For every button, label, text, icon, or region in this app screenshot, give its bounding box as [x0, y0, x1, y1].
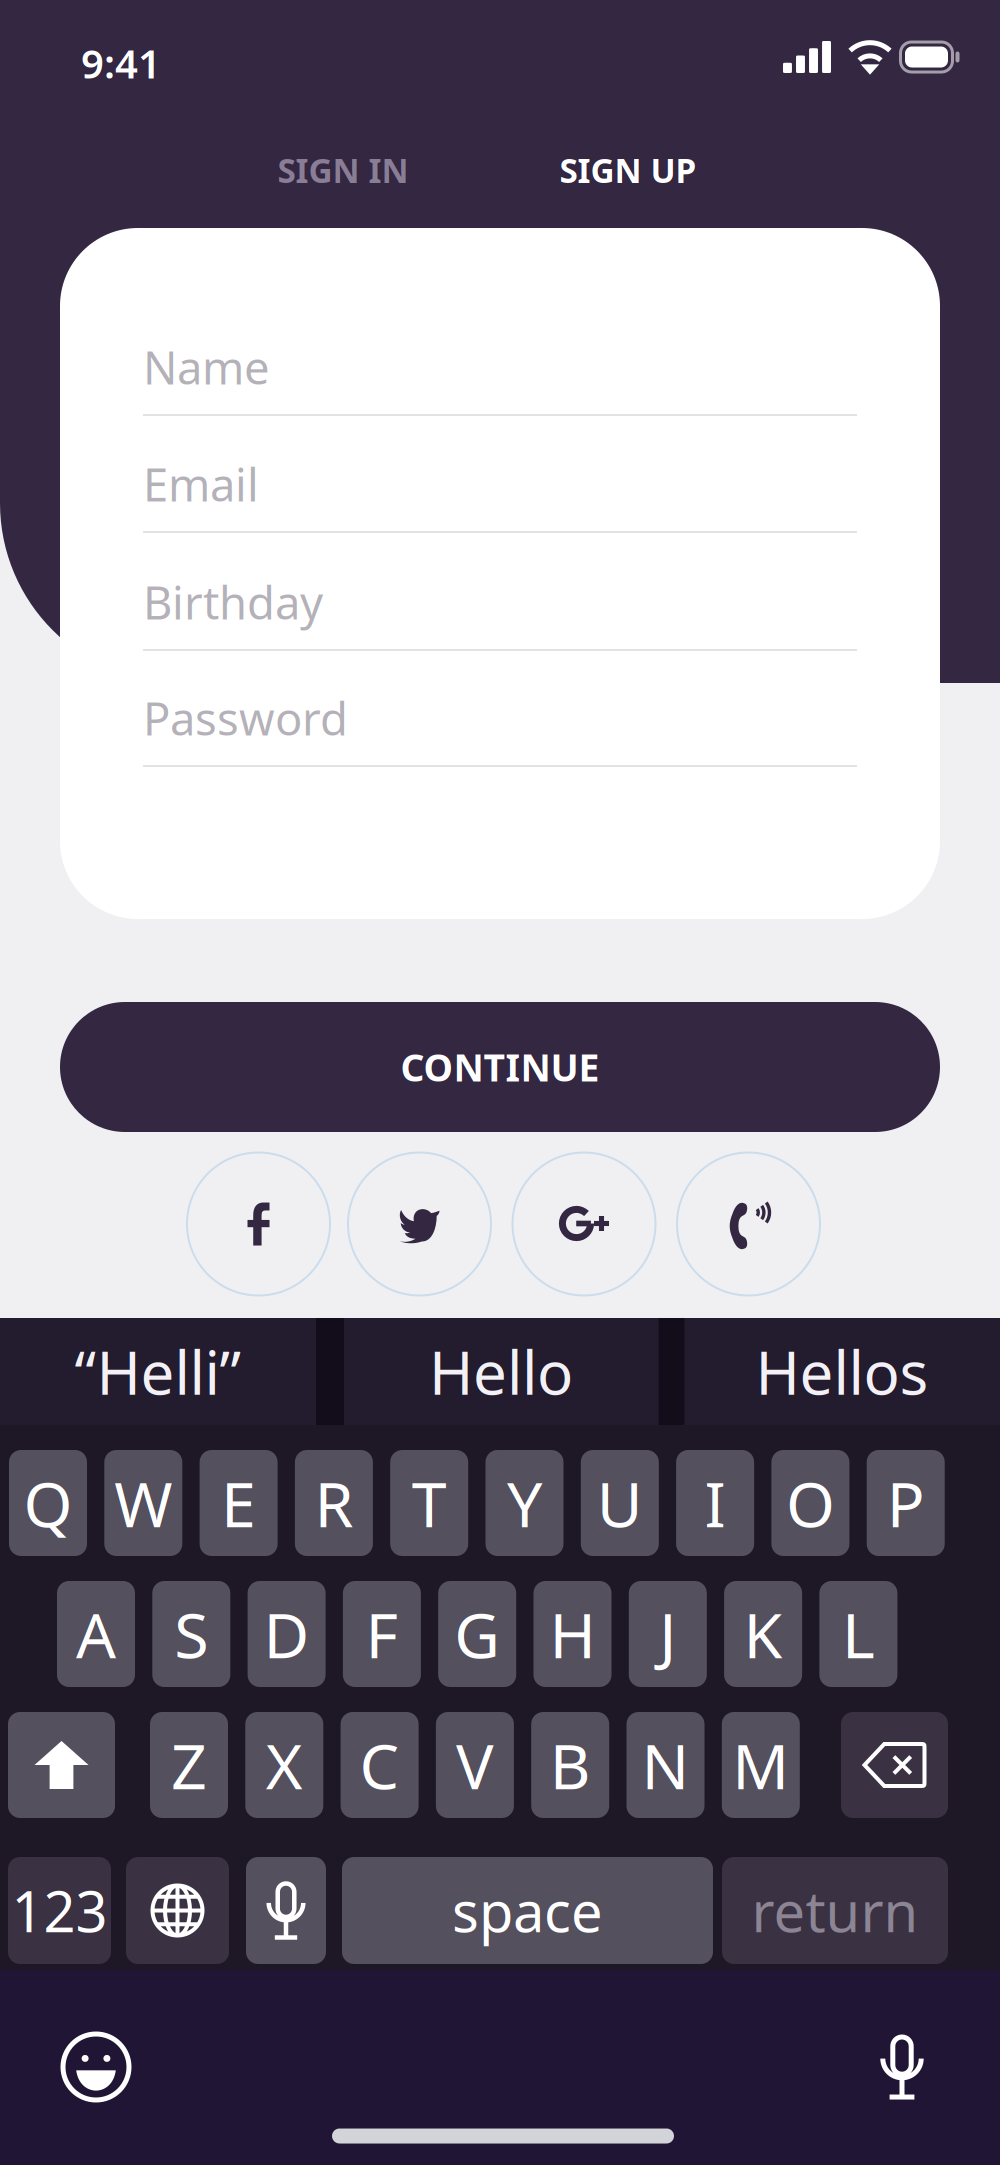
button[interactable]: Sign up with phone [676, 1151, 821, 1296]
staticText: Email [143, 454, 259, 514]
staticText: N [641, 1723, 689, 1807]
button[interactable]: Shift [8, 1712, 115, 1818]
button[interactable]: G [438, 1581, 516, 1687]
button[interactable]: Sign up with Twitter [347, 1151, 492, 1296]
staticText: V [456, 1723, 494, 1807]
staticText: C [360, 1723, 400, 1807]
staticText: Hello [429, 1332, 573, 1411]
button[interactable]: C [341, 1712, 419, 1818]
button[interactable]: SIGN UP [508, 136, 748, 204]
staticText: R [314, 1461, 353, 1545]
staticText: H [549, 1592, 595, 1676]
button[interactable]: S [152, 1581, 230, 1687]
button[interactable]: Sign up with Facebook [186, 1151, 331, 1296]
button[interactable]: L [819, 1581, 897, 1687]
staticText: 9:41 [81, 36, 161, 89]
button[interactable]: Q [9, 1450, 87, 1556]
staticText: O [786, 1461, 835, 1545]
button[interactable]: Sign up with Google [511, 1151, 656, 1296]
button[interactable]: T [390, 1450, 468, 1556]
button[interactable]: J [629, 1581, 707, 1687]
staticText: S [174, 1592, 208, 1676]
staticText: return [751, 1873, 918, 1948]
button[interactable]: Emoji [48, 2019, 144, 2115]
staticText: F [365, 1592, 398, 1676]
staticText: Q [23, 1461, 72, 1545]
button[interactable]: Y [485, 1450, 563, 1556]
button[interactable]: A [57, 1581, 135, 1687]
button[interactable]: Delete [841, 1712, 948, 1818]
button[interactable]: K [724, 1581, 802, 1687]
staticText: Birthday [143, 572, 323, 632]
staticText: CONTINUE [400, 1042, 599, 1092]
staticText: K [744, 1592, 783, 1676]
button[interactable]: Hellos [684, 1318, 1000, 1425]
button[interactable]: B [531, 1712, 609, 1818]
button[interactable]: W [104, 1450, 182, 1556]
staticText: SIGN UP [559, 148, 696, 192]
staticText: Password [143, 688, 348, 748]
button[interactable]: E [200, 1450, 278, 1556]
staticText: Y [507, 1461, 542, 1545]
staticText: U [597, 1461, 643, 1545]
staticText: Hellos [755, 1332, 928, 1411]
staticText: J [659, 1592, 676, 1676]
button[interactable]: Dictation [246, 1857, 326, 1964]
staticText: W [114, 1461, 172, 1545]
staticText: Z [171, 1723, 207, 1807]
button[interactable]: V [436, 1712, 514, 1818]
staticText: M [732, 1723, 789, 1807]
staticText: T [412, 1461, 447, 1545]
button[interactable]: 123 [8, 1857, 111, 1964]
button[interactable]: H [533, 1581, 611, 1687]
staticText: D [264, 1592, 310, 1676]
staticText: G [454, 1592, 500, 1676]
button[interactable]: Next keyboard [126, 1857, 229, 1964]
button[interactable]: P [867, 1450, 945, 1556]
button[interactable]: O [771, 1450, 849, 1556]
button[interactable]: F [343, 1581, 421, 1687]
button[interactable]: SIGN IN [223, 136, 463, 204]
button[interactable]: U [581, 1450, 659, 1556]
button[interactable]: return [722, 1857, 948, 1964]
staticText: SIGN IN [277, 148, 408, 192]
button[interactable]: R [295, 1450, 373, 1556]
staticText: E [221, 1461, 256, 1545]
button[interactable]: CONTINUE [60, 1002, 940, 1132]
button[interactable]: X [245, 1712, 323, 1818]
staticText: “Helli” [74, 1332, 241, 1411]
staticText: Name [143, 337, 270, 397]
staticText: I [705, 1461, 726, 1545]
button[interactable]: M [722, 1712, 800, 1818]
button[interactable]: Z [150, 1712, 228, 1818]
button[interactable]: D [248, 1581, 326, 1687]
button[interactable]: “Helli” [0, 1318, 316, 1425]
staticText: X [266, 1723, 303, 1807]
button[interactable]: Hello [343, 1318, 658, 1425]
staticText: L [842, 1592, 875, 1676]
button[interactable]: space [342, 1857, 713, 1964]
staticText: P [887, 1461, 925, 1545]
button[interactable]: Dictation [854, 2019, 950, 2115]
staticText: A [76, 1592, 116, 1676]
staticText: 123 [11, 1873, 107, 1948]
staticText: B [550, 1723, 591, 1807]
button[interactable]: I [676, 1450, 754, 1556]
button[interactable]: N [626, 1712, 704, 1818]
staticText: space [452, 1873, 603, 1948]
